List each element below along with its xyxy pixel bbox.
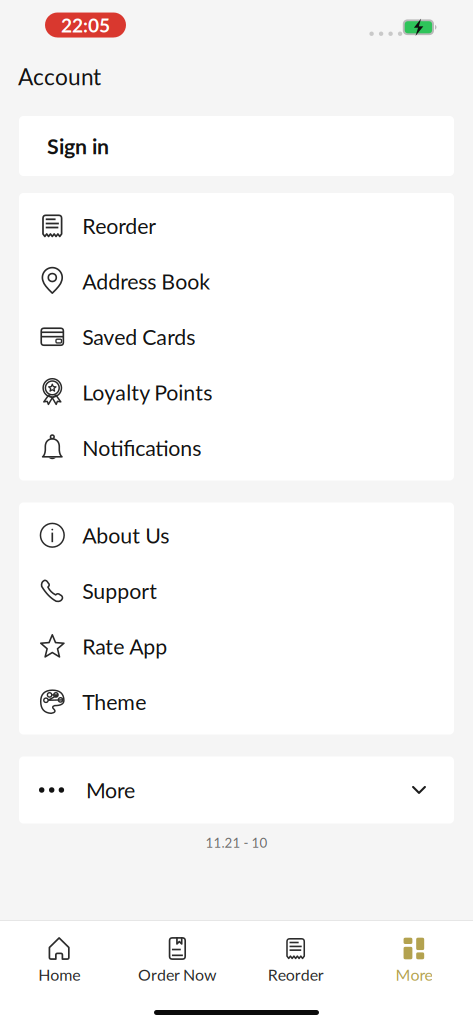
staticText: Reorder [268, 965, 324, 984]
staticText: Theme [82, 689, 146, 715]
staticText: Support [82, 578, 157, 604]
button[interactable]: About Us [19, 507, 454, 563]
staticText: Notifications [82, 435, 201, 461]
staticText: Reorder [82, 213, 156, 239]
staticText: 11.21 - 10 [205, 834, 267, 850]
button[interactable]: Home [0, 921, 118, 984]
button[interactable]: Loyalty Points [19, 364, 454, 420]
staticText: More [86, 777, 135, 803]
staticText: Account [18, 63, 101, 90]
button[interactable]: Reorder [236, 921, 355, 984]
button[interactable]: Rate App [19, 618, 454, 674]
staticText: Address Book [82, 268, 210, 294]
staticText: About Us [82, 522, 169, 548]
staticText: Home [38, 965, 80, 984]
staticText: Rate App [82, 633, 167, 659]
button[interactable]: Reorder [19, 198, 454, 253]
button[interactable]: More [19, 756, 454, 823]
button[interactable]: Sign in [19, 116, 454, 176]
staticText: Sign in [47, 133, 109, 159]
button[interactable]: Address Book [19, 253, 454, 309]
button[interactable]: Theme [19, 674, 454, 729]
staticText: More [395, 965, 432, 984]
button[interactable]: Saved Cards [19, 309, 454, 364]
staticText: Loyalty Points [82, 379, 212, 405]
staticText: 22:05 [61, 13, 110, 36]
button[interactable]: Support [19, 563, 454, 618]
staticText: Saved Cards [82, 324, 195, 350]
button[interactable]: Notifications [19, 420, 454, 475]
button[interactable]: Order Now [118, 921, 236, 984]
staticText: Order Now [138, 965, 217, 984]
button[interactable]: More [355, 921, 473, 984]
